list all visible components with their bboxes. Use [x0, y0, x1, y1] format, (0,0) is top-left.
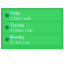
staticText: 5.1 km run [10, 39, 29, 45]
button[interactable]: Tuesday [3, 22, 61, 33]
staticText: Today [10, 10, 20, 15]
button[interactable]: Today [3, 10, 61, 21]
staticText: 2.4 km walk [10, 15, 31, 21]
button[interactable]: Monday [3, 34, 61, 45]
staticText: 11.8 km ride [10, 27, 32, 33]
staticText: Monday [10, 34, 24, 39]
staticText: Tuesday [10, 22, 24, 27]
